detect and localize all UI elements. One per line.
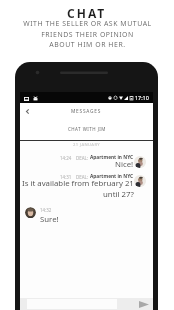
staticText: 21 JANUARY <box>73 142 101 148</box>
staticText: CHAT WITH JIM <box>68 126 106 132</box>
staticText: MESSAGES <box>71 108 102 115</box>
button[interactable]: Back <box>20 104 35 119</box>
button[interactable]: Send <box>138 298 150 310</box>
staticText: 14:24 <box>60 155 72 161</box>
staticText: CHAT <box>67 5 107 21</box>
staticText: Is it available from february 21 <box>22 178 134 189</box>
staticText: 14:32 <box>40 207 52 213</box>
staticText: Sure! <box>40 214 59 225</box>
staticText: Apartment in NYC <box>90 154 134 161</box>
staticText: WITH THE SELLER OR ASK MUTUAL FRIENDS TH… <box>23 19 152 49</box>
button[interactable]: CHAT WITH JIM <box>20 120 153 140</box>
staticText: until 27? <box>103 189 134 200</box>
staticText: DEAL: <box>76 174 88 180</box>
staticText: DEAL: <box>76 155 88 161</box>
staticText: Apartment in NYC <box>90 173 134 180</box>
staticText: 14:31 <box>60 174 72 180</box>
staticText: 17:10 <box>135 94 149 101</box>
staticText: Nice! <box>115 159 134 170</box>
